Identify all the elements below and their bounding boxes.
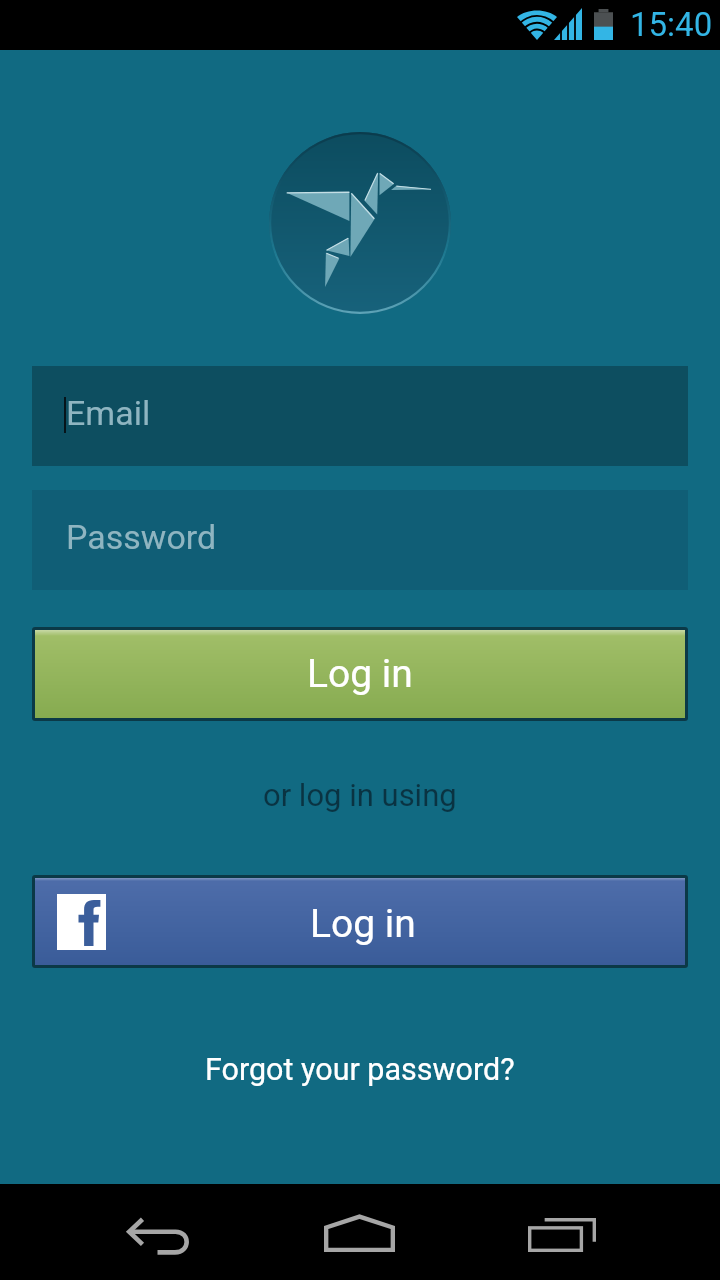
staticText: Email (66, 393, 151, 433)
button[interactable]: Home (300, 1187, 420, 1277)
staticText: Log in (307, 651, 413, 697)
button[interactable]: Log in (35, 878, 685, 965)
staticText: Log in (310, 901, 416, 947)
staticText: Forgot your password? (205, 1052, 515, 1088)
button[interactable]: Back (96, 1187, 222, 1277)
staticText: or log in using (263, 777, 457, 813)
staticText: 15:40 (630, 5, 713, 44)
button[interactable]: Email (32, 366, 688, 466)
button[interactable]: Forgot your password? (187, 1047, 533, 1093)
button[interactable]: Log in (35, 630, 685, 718)
staticText: Password (66, 517, 217, 557)
button[interactable]: Password (32, 490, 688, 590)
button[interactable]: Recent apps (502, 1187, 622, 1277)
